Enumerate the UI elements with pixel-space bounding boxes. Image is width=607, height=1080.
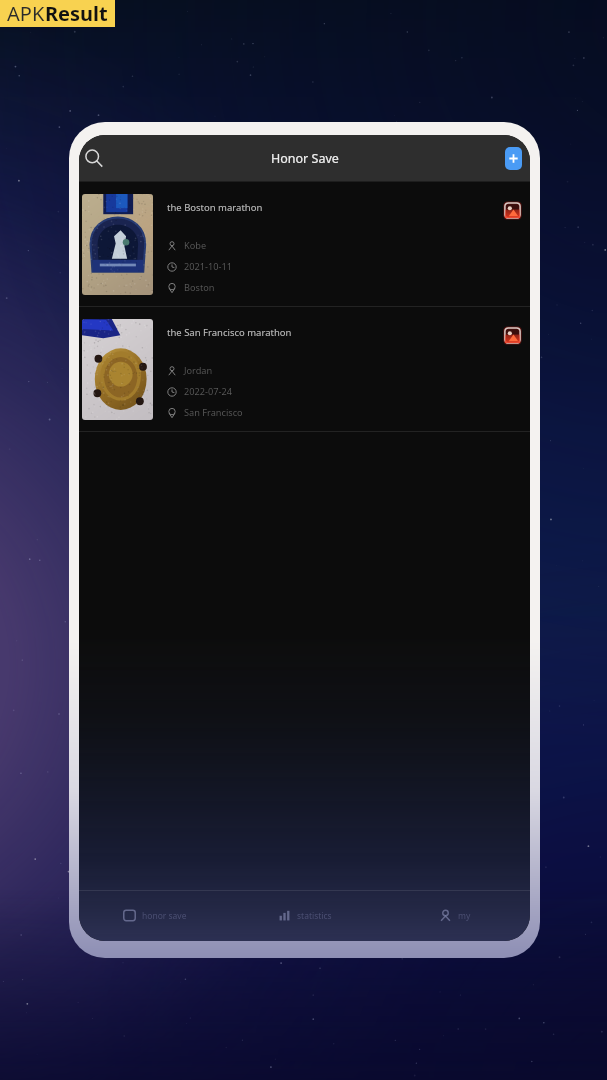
staticText: my (458, 910, 471, 922)
staticText: Kobe (184, 239, 207, 252)
staticText: statistics (297, 910, 332, 922)
staticText: Honor Save (271, 150, 339, 167)
button[interactable]: the San Francisco marathon (79, 307, 530, 431)
button[interactable]: Search (79, 144, 107, 172)
button[interactable]: honor save (79, 890, 230, 941)
staticText: Result (45, 0, 108, 27)
button[interactable]: Add (505, 147, 522, 170)
staticText: 2022-07-24 (184, 385, 232, 398)
button[interactable]: Photo (502, 325, 522, 345)
staticText: APK (7, 0, 45, 27)
staticText: San Francisco (184, 406, 243, 419)
staticText: the San Francisco marathon (167, 326, 292, 339)
button[interactable]: Photo (502, 200, 522, 220)
staticText: honor save (142, 910, 187, 922)
button[interactable]: the Boston marathon (79, 182, 530, 306)
staticText: Jordan (184, 364, 213, 377)
button[interactable]: my (380, 890, 530, 941)
staticText: the Boston marathon (167, 201, 263, 214)
staticText: 2021-10-11 (184, 260, 232, 273)
button[interactable]: statistics (230, 890, 380, 941)
staticText: Boston (184, 281, 215, 294)
